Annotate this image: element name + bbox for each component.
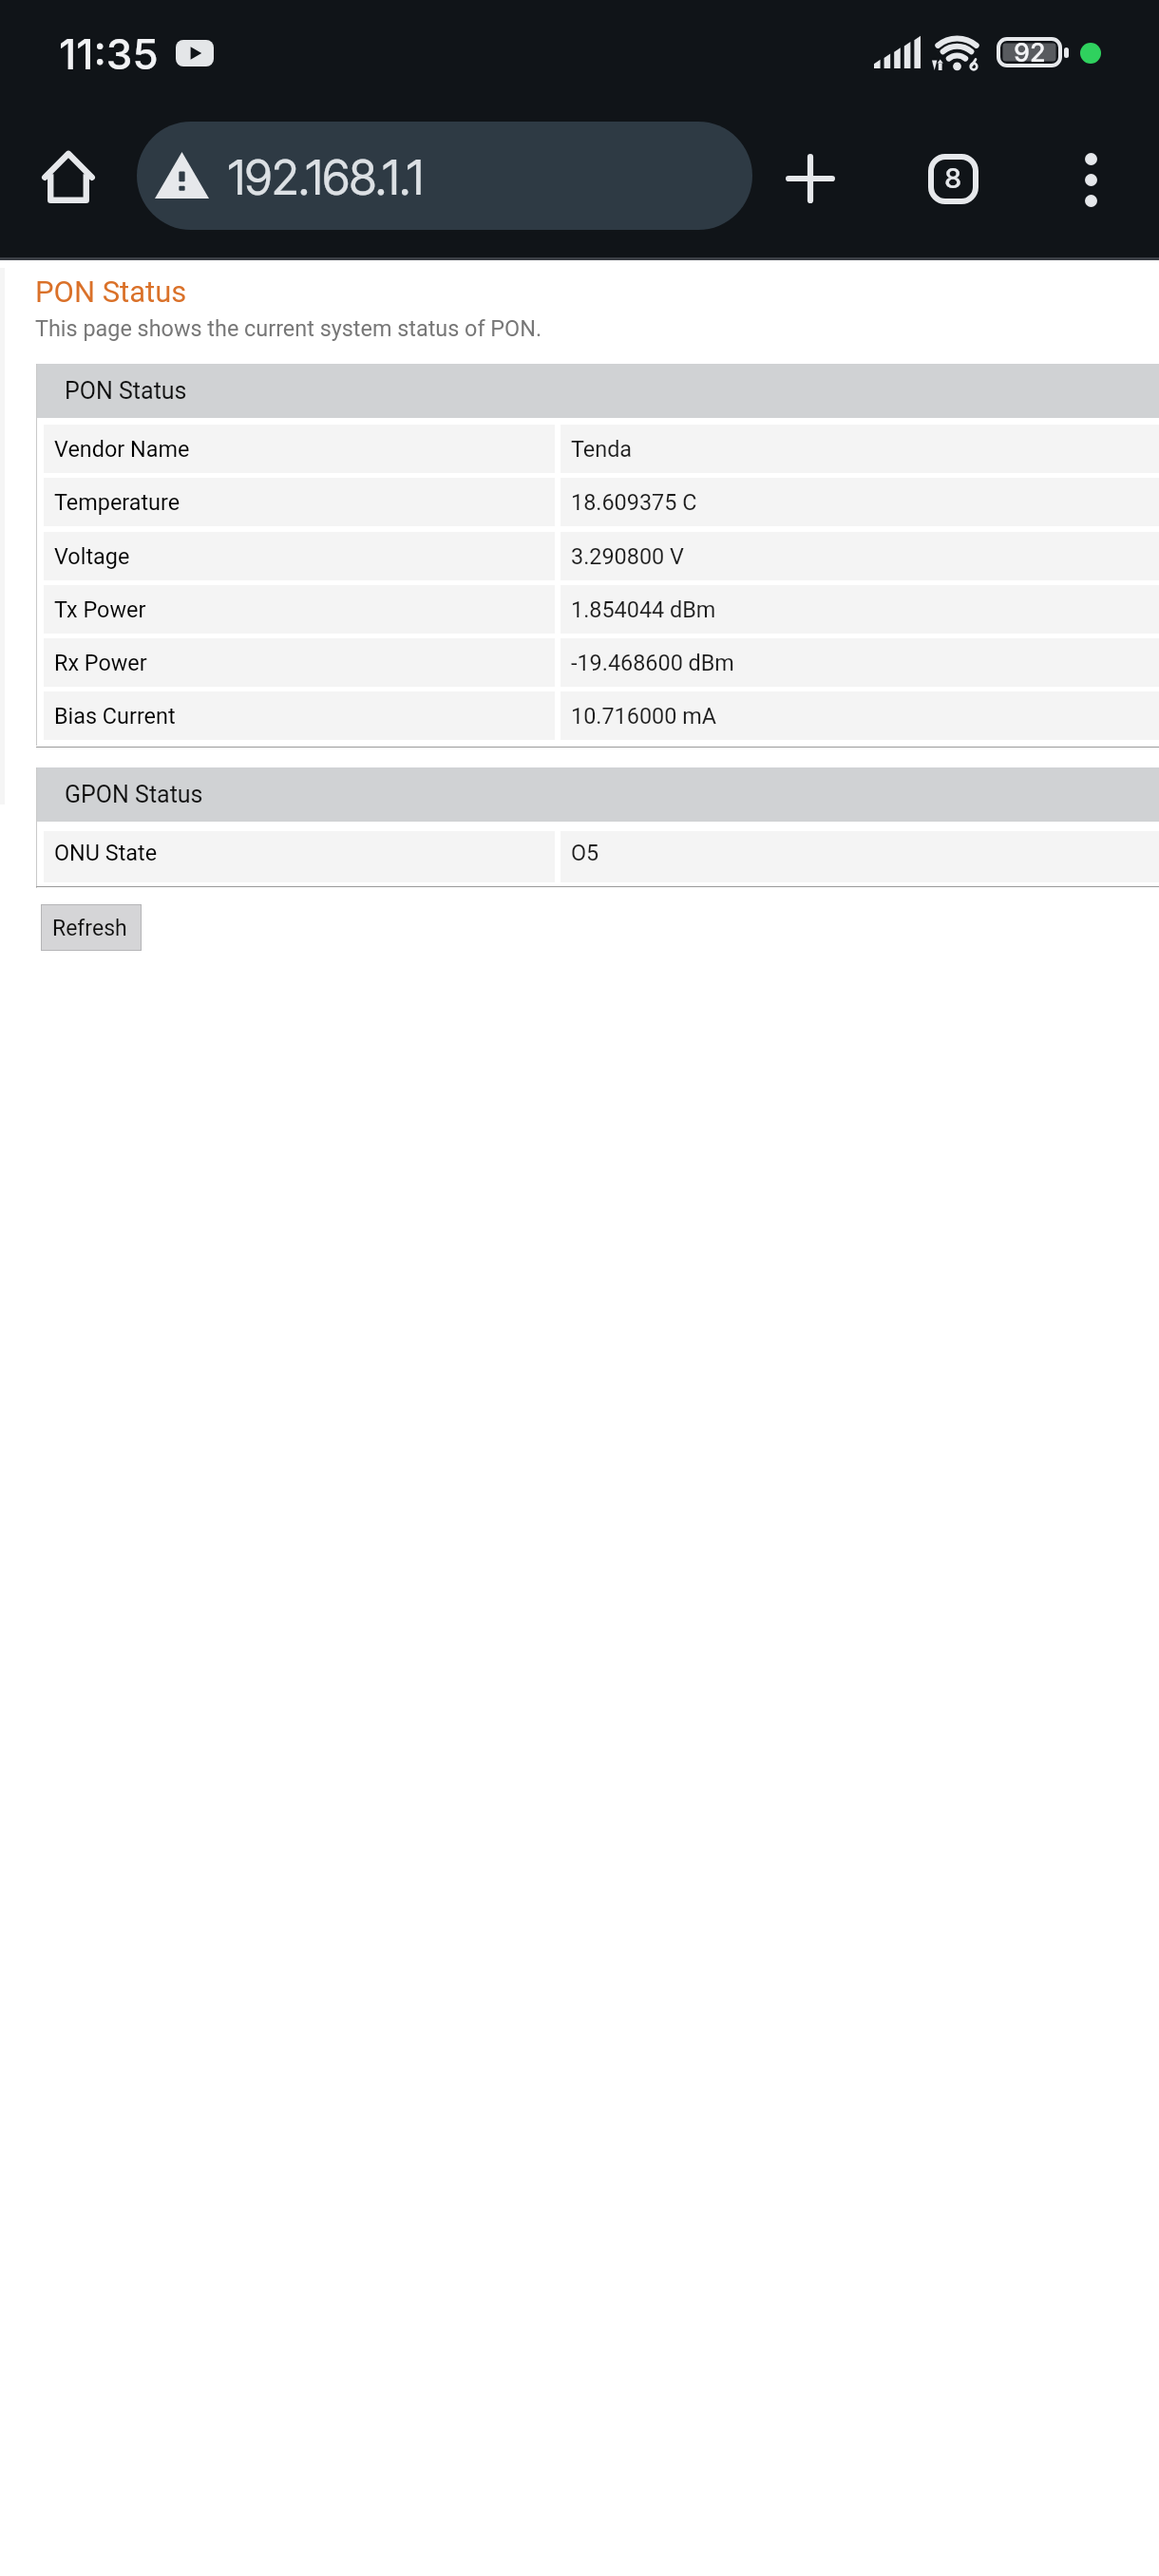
button[interactable]: Home [13,123,123,230]
staticText: 1.854044 dBm [571,597,716,622]
staticText: 18.609375 C [571,489,697,515]
button[interactable]: Refresh [41,904,142,951]
staticText: Temperature [54,489,180,515]
staticText: -19.468600 dBm [571,650,734,675]
staticText: 10.716000 mA [571,703,716,729]
button[interactable]: 192.168.1.1 [137,122,752,230]
staticText: PON Status [35,275,187,309]
staticText: Voltage [54,543,130,569]
staticText: 192.168.1.1 [228,149,424,206]
staticText: Refresh [52,916,127,941]
staticText: GPON Status [65,781,203,808]
staticText: 3.290800 V [571,543,684,569]
staticText: 8 [944,161,962,195]
staticText: PON Status [65,377,187,405]
staticText: Bias Current [54,703,176,729]
button[interactable]: More options [1035,126,1146,233]
staticText: Vendor Name [54,436,190,462]
staticText: Tx Power [54,597,146,622]
staticText: ONU State [54,840,158,865]
staticText: 11:35 [59,28,159,79]
staticText: Tenda [571,436,633,462]
staticText: Rx Power [54,650,147,675]
button[interactable]: Tabs, 8 open [898,125,1008,232]
staticText: 92 [1014,37,1046,67]
staticText: This page shows the current system statu… [35,315,542,341]
staticText: O5 [571,840,599,865]
button[interactable]: New tab [755,125,865,232]
